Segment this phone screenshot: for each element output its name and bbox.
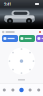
button[interactable]: More	[34, 84, 43, 96]
button[interactable]: Controls	[17, 84, 26, 96]
button[interactable]: Quick action	[19, 35, 35, 42]
button[interactable]: Quick action	[36, 35, 43, 42]
button[interactable]: Charging	[9, 84, 17, 96]
staticText: 9:41	[4, 1, 11, 7]
button[interactable]: Quick action	[2, 35, 18, 42]
button[interactable]: Climate	[0, 84, 9, 96]
button[interactable]: Location	[26, 84, 34, 96]
